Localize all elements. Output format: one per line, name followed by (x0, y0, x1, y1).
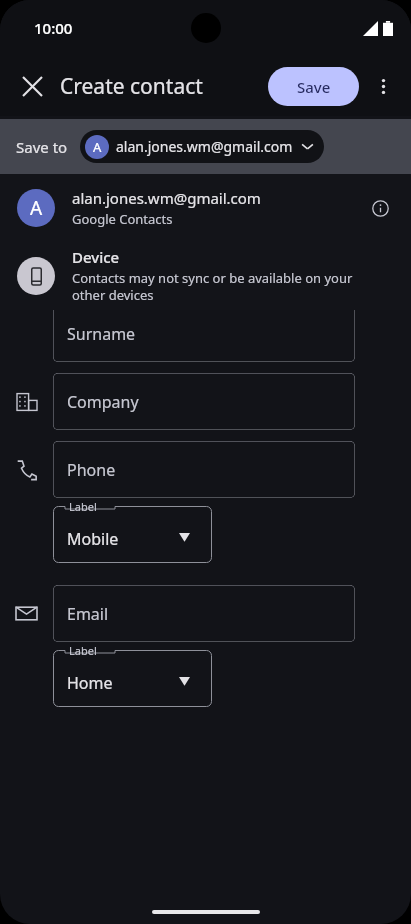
staticText: alan.jones.wm@gmail.com (72, 188, 261, 208)
button[interactable] (171, 124, 241, 194)
button[interactable]: Device (0, 241, 411, 310)
button[interactable]: First name (53, 237, 355, 294)
staticText: Add picture (164, 195, 247, 215)
staticText: Create contact (60, 72, 203, 101)
staticText: A (30, 195, 43, 221)
button[interactable]: Email (53, 585, 355, 642)
staticText: Contacts may not sync or be available on… (72, 269, 383, 304)
staticText: Home (67, 672, 113, 694)
staticText: Company (67, 391, 139, 413)
button[interactable]: A (80, 130, 324, 163)
button[interactable]: Label (53, 506, 212, 563)
staticText: Email (67, 603, 109, 625)
staticText: Surname (67, 323, 136, 345)
staticText: First name (67, 255, 147, 277)
button[interactable]: Company (53, 373, 355, 430)
button[interactable]: Surname (53, 305, 355, 362)
staticText: Label (69, 643, 97, 658)
button[interactable]: Phone (53, 441, 355, 498)
staticText: Device (72, 247, 120, 267)
staticText: Google Contacts (72, 210, 173, 228)
staticText: Label (69, 499, 97, 514)
staticText: Save to (16, 137, 68, 157)
staticText: Phone (67, 459, 116, 481)
button[interactable]: A (0, 174, 411, 241)
button[interactable]: More options (361, 64, 405, 108)
button[interactable]: Label (53, 650, 212, 707)
staticText: Mobile (67, 528, 119, 550)
button[interactable]: Add picture (0, 195, 411, 215)
staticText: 10:00 (34, 18, 73, 38)
button[interactable]: Account info (358, 186, 402, 230)
button[interactable]: Close (10, 64, 54, 108)
staticText: A (93, 138, 102, 156)
staticText: alan.jones.wm@gmail.com (116, 137, 293, 156)
button[interactable]: Save (268, 67, 359, 106)
staticText: Save (297, 77, 331, 97)
